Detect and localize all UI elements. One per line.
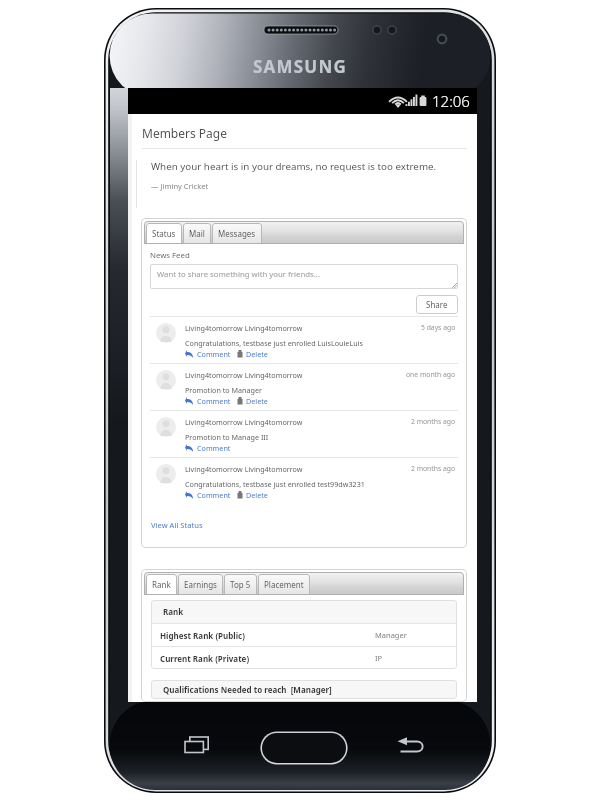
staticText: Living4tomorrow Living4tomorrow bbox=[185, 370, 303, 380]
button[interactable]: Rank bbox=[146, 574, 177, 595]
staticText: Living4tomorrow Living4tomorrow bbox=[185, 417, 303, 427]
staticText: Qualifications Needed to reach [Manager] bbox=[163, 684, 332, 695]
staticText: one month ago bbox=[406, 370, 456, 379]
button[interactable]: Messages bbox=[212, 223, 262, 244]
button[interactable]: Comment bbox=[197, 443, 231, 453]
staticText: Manager bbox=[375, 630, 407, 640]
staticText: Top 5 bbox=[230, 579, 251, 590]
button[interactable]: Delete bbox=[246, 349, 268, 359]
staticText: Placement bbox=[264, 579, 304, 590]
staticText: Want to share something with your friend… bbox=[157, 269, 321, 280]
button[interactable]: Earnings bbox=[178, 574, 223, 595]
staticText: Promotion to Manager bbox=[185, 385, 262, 395]
button[interactable]: Comment bbox=[197, 396, 231, 406]
button[interactable]: Comment bbox=[197, 349, 231, 359]
staticText: 2 months ago bbox=[411, 464, 456, 473]
button[interactable]: Delete bbox=[246, 490, 268, 500]
staticText: Share bbox=[426, 299, 448, 310]
staticText: 2 months ago bbox=[411, 417, 456, 426]
button[interactable]: Top 5 bbox=[224, 574, 257, 595]
staticText: IP bbox=[375, 653, 383, 663]
button[interactable]: View All Status bbox=[151, 520, 203, 530]
staticText: Messages bbox=[218, 228, 256, 239]
staticText: Rank bbox=[163, 606, 184, 617]
staticText: News Feed bbox=[150, 250, 190, 261]
button[interactable]: Share bbox=[416, 295, 458, 314]
staticText: Members Page bbox=[142, 125, 227, 141]
button[interactable]: Status bbox=[146, 223, 182, 244]
staticText: Promotion to Manage III bbox=[185, 432, 269, 442]
button[interactable]: Comment bbox=[197, 490, 231, 500]
staticText: Earnings bbox=[184, 579, 217, 590]
button[interactable]: Mail bbox=[183, 223, 211, 244]
button[interactable]: Delete bbox=[246, 396, 268, 406]
staticText: 5 days ago bbox=[421, 323, 456, 332]
staticText: 12:06 bbox=[432, 91, 470, 111]
staticText: Living4tomorrow Living4tomorrow bbox=[185, 323, 303, 333]
staticText: Congratulations, testbase just enrolled … bbox=[185, 338, 363, 348]
staticText: Rank bbox=[152, 579, 171, 590]
staticText: Highest Rank (Public) bbox=[160, 630, 245, 641]
staticText: — Jiminy Cricket bbox=[151, 181, 209, 191]
staticText: Status bbox=[152, 228, 176, 239]
staticText: SAMSUNG bbox=[253, 55, 347, 78]
staticText: When your heart is in your dreams, no re… bbox=[151, 160, 437, 173]
staticText: Mail bbox=[189, 228, 205, 239]
staticText: Living4tomorrow Living4tomorrow bbox=[185, 464, 303, 474]
staticText: Congratulations, testbase just enrolled … bbox=[185, 479, 365, 489]
staticText: Current Rank (Private) bbox=[160, 653, 250, 664]
button[interactable]: Placement bbox=[258, 574, 310, 595]
